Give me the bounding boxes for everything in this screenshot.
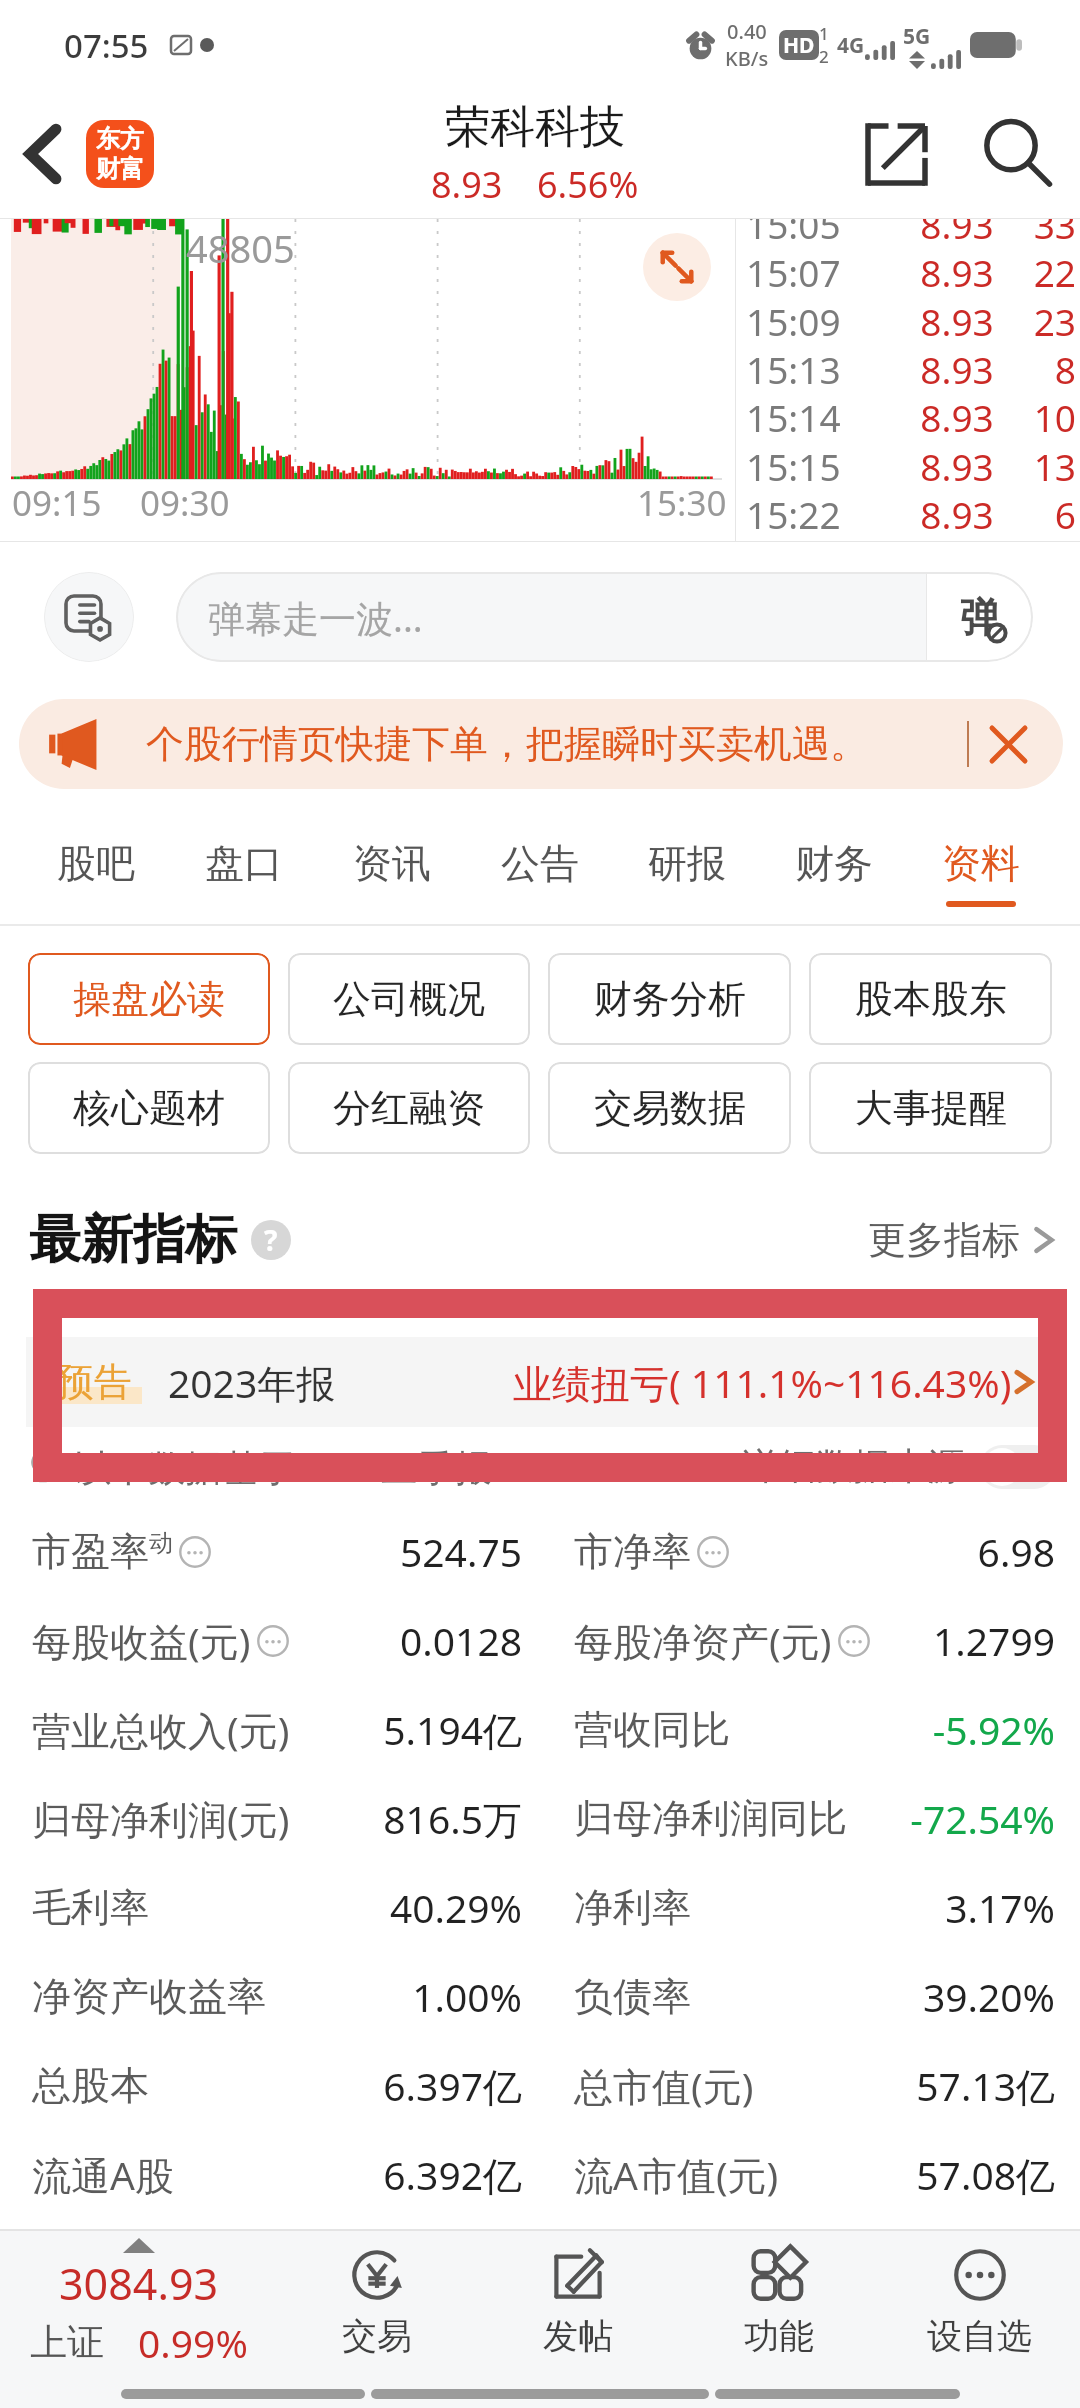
button[interactable]: 设自选 <box>879 2231 1080 2375</box>
staticText: 操盘必读 <box>73 975 225 1023</box>
button[interactable]: 分红融资 <box>288 1062 530 1154</box>
button[interactable]: 股本股东 <box>809 953 1052 1045</box>
button[interactable]: Toggle data source <box>980 1445 1056 1489</box>
staticText: ? <box>264 1221 278 1259</box>
staticText: 市净率 <box>574 1527 691 1576</box>
staticText: 总股本 <box>32 2061 149 2110</box>
staticText: 8 <box>1016 344 1076 392</box>
staticText: 以下数据基于2023三季报 <box>74 1441 492 1492</box>
button[interactable]: 3084.93 <box>0 2231 277 2375</box>
staticText: 8.93 <box>898 344 1016 392</box>
button[interactable]: 更多指标 <box>868 1216 1054 1264</box>
staticText: 归母净利润(元) <box>32 1792 290 1845</box>
staticText: 盘口 <box>205 839 283 888</box>
staticText: 8.93 <box>898 489 1016 537</box>
button[interactable]: 功能 <box>678 2231 879 2375</box>
staticText: 功能 <box>744 2314 814 2358</box>
button[interactable]: 股吧 <box>22 797 170 926</box>
staticText: -5.92% <box>932 1703 1055 1756</box>
staticText: -72.54% <box>910 1792 1055 1845</box>
staticText: 最新指标 <box>29 1207 237 1273</box>
staticText: 15:14 <box>746 392 898 440</box>
staticText: 每股净资产(元) <box>574 1614 832 1667</box>
staticText: 33 <box>1016 219 1076 247</box>
button[interactable]: 公司概况 <box>288 953 530 1045</box>
staticText: 业绩扭亏( 111.1%~116.43%) <box>513 1356 1012 1409</box>
staticText: 07:55 <box>64 23 149 68</box>
button[interactable]: 交易 <box>277 2231 477 2375</box>
staticText: 设自选 <box>927 2314 1032 2358</box>
button[interactable]: 大事提醒 <box>809 1062 1052 1154</box>
staticText: 09:30 <box>140 479 230 527</box>
staticText: 预告 <box>56 1358 132 1406</box>
staticText: 归母净利润同比 <box>574 1794 847 1843</box>
button[interactable]: 核心题材 <box>28 1062 270 1154</box>
staticText: 分红融资 <box>333 1084 485 1132</box>
button[interactable]: Share <box>822 90 970 218</box>
button[interactable]: 研报 <box>613 797 760 926</box>
staticText: 股吧 <box>57 839 135 888</box>
staticText: 40.29% <box>389 1881 522 1934</box>
button[interactable]: 资讯 <box>318 797 466 926</box>
staticText: 公司概况 <box>333 975 485 1023</box>
button[interactable]: Search <box>970 106 1066 202</box>
staticText: 6.397亿 <box>383 2059 522 2112</box>
button[interactable]: 财务 <box>760 797 907 926</box>
button[interactable]: 资料 <box>907 797 1054 926</box>
button[interactable]: 弹幕走一波... <box>176 572 1033 662</box>
button[interactable]: Notes <box>44 572 134 662</box>
staticText: 8.93 <box>898 247 1016 295</box>
staticText: 15:05 <box>746 219 898 247</box>
staticText: 6.98 <box>977 1525 1055 1578</box>
button[interactable]: 操盘必读 <box>28 953 270 1045</box>
staticText: 15:22 <box>746 489 898 537</box>
button[interactable]: 盘口 <box>170 797 318 926</box>
staticText: 发帖 <box>543 2314 613 2358</box>
staticText: 1.00% <box>412 1970 522 2023</box>
staticText: 荣科科技 <box>445 99 625 156</box>
button[interactable]: East Money logo <box>86 120 154 188</box>
staticText: 净资产收益率 <box>32 1972 266 2021</box>
staticText: 15:30 <box>637 479 727 527</box>
staticText: 2023年报 <box>168 1356 336 1409</box>
staticText: 股本股东 <box>855 975 1007 1023</box>
button[interactable]: Help <box>251 1220 291 1260</box>
button[interactable]: Send danmu <box>927 572 1033 662</box>
staticText: 57.13亿 <box>916 2059 1055 2112</box>
button[interactable]: 交易数据 <box>548 1062 791 1154</box>
staticText: 5.194亿 <box>383 1703 522 1756</box>
staticText: 营业总收入(元) <box>32 1703 290 1756</box>
staticText: 财务 <box>795 839 873 888</box>
staticText: 6 <box>1016 489 1076 537</box>
staticText: 流通A股 <box>32 2148 174 2201</box>
staticText: 详细数据来源 <box>742 1443 964 1490</box>
staticText: 0.40 <box>727 18 767 45</box>
staticText: 8.93 <box>431 160 503 209</box>
staticText: 总市值(元) <box>574 2059 754 2112</box>
staticText: 39.20% <box>922 1970 1055 2023</box>
button[interactable]: Close banner <box>984 720 1032 768</box>
staticText: 6.392亿 <box>383 2148 522 2201</box>
button[interactable]: 个股行情页快捷下单，把握瞬时买卖机遇。 <box>19 699 1063 789</box>
button[interactable]: Expand chart <box>643 233 711 301</box>
button[interactable]: Back <box>0 90 86 218</box>
button[interactable]: 公告 <box>466 797 613 926</box>
staticText: 15:13 <box>746 344 898 392</box>
staticText: 15:15 <box>746 441 898 489</box>
button[interactable]: 财务分析 <box>548 953 791 1045</box>
staticText: 市盈率 <box>32 1527 149 1576</box>
staticText: 8.93 <box>898 441 1016 489</box>
staticText: 核心题材 <box>73 1084 225 1132</box>
button[interactable]: 发帖 <box>477 2231 678 2375</box>
staticText: 弹 <box>960 592 1000 642</box>
staticText: 3.17% <box>945 1881 1055 1934</box>
staticText: 816.5万 <box>383 1792 522 1845</box>
staticText: 财务分析 <box>594 975 746 1023</box>
staticText: 1.2799 <box>933 1614 1055 1667</box>
staticText: 8.93 <box>898 392 1016 440</box>
button[interactable]: 预告 <box>56 1337 1034 1427</box>
staticText: 大事提醒 <box>855 1084 1007 1132</box>
staticText: KB/s <box>725 45 769 72</box>
staticText: 8.93 <box>898 219 1016 247</box>
staticText: 3084.93 <box>59 2254 219 2313</box>
